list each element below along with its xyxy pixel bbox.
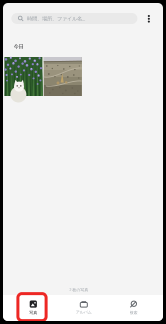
staticText: 今日 [14, 43, 24, 50]
button[interactable]: アルバム [60, 296, 108, 320]
staticText: アルバム [76, 310, 92, 314]
staticText: 時間、場所、ファイル名... [27, 15, 85, 22]
staticText: 検索 [129, 310, 137, 315]
button[interactable]: Photo of a white cat among flowers [4, 57, 42, 96]
staticText: 写真 [29, 310, 37, 315]
button[interactable]: 検索 [109, 296, 157, 320]
button[interactable]: 写真 [9, 296, 57, 320]
button[interactable]: More options [142, 12, 155, 25]
staticText: 2 枚の写真 [69, 287, 88, 292]
button[interactable]: Photo of terrain [44, 57, 82, 96]
button[interactable]: 時間、場所、ファイル名... [11, 13, 137, 24]
